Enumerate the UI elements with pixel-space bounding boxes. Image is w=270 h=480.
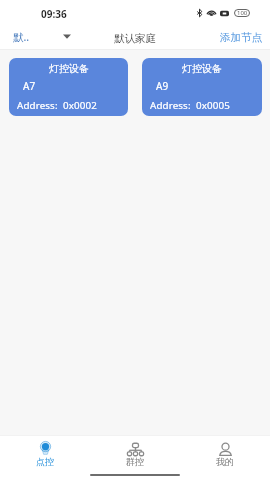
staticText: 群控: [126, 456, 144, 467]
button[interactable]: Group control: [90, 436, 180, 467]
button[interactable]: Spot control: [0, 436, 90, 467]
staticText: 100: [237, 9, 248, 17]
button[interactable]: 添加节点: [212, 29, 270, 48]
staticText: Address: 0x0005: [150, 99, 230, 112]
staticText: 09:36: [41, 7, 67, 21]
button[interactable]: 默..: [0, 28, 79, 48]
staticText: 我的: [216, 456, 234, 467]
button[interactable]: 灯控设备: [142, 58, 262, 116]
staticText: 默认家庭: [114, 32, 156, 45]
button[interactable]: 灯控设备: [9, 58, 128, 116]
staticText: Address: 0x0002: [17, 99, 97, 112]
staticText: A9: [156, 79, 169, 93]
staticText: A7: [23, 79, 36, 93]
staticText: 灯控设备: [49, 62, 89, 75]
button[interactable]: Mine: [180, 436, 270, 467]
staticText: 默..: [13, 30, 30, 44]
staticText: 点控: [36, 456, 54, 467]
staticText: 添加节点: [220, 31, 262, 44]
staticText: 灯控设备: [182, 62, 222, 75]
